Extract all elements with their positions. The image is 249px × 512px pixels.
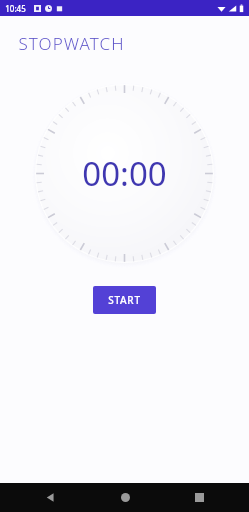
staticText: STOPWATCH: [18, 32, 125, 55]
button[interactable]: Back: [26, 483, 74, 512]
button[interactable]: START: [93, 286, 156, 314]
staticText: START: [108, 293, 141, 307]
staticText: 10:45: [5, 3, 26, 14]
staticText: 00:00: [82, 151, 167, 196]
button[interactable]: Home: [101, 483, 149, 512]
button[interactable]: Recent apps: [175, 483, 223, 512]
